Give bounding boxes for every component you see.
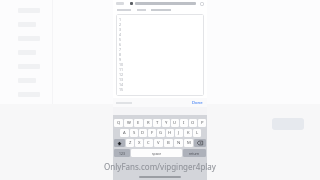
staticText: N: [177, 140, 181, 146]
staticText: 12: [119, 72, 124, 77]
staticText: 9: [119, 57, 122, 62]
staticText: P: [201, 120, 204, 126]
staticText: 13: [119, 77, 124, 82]
button[interactable]: return: [183, 149, 206, 157]
staticText: V: [157, 140, 160, 146]
button[interactable]: O: [189, 119, 197, 127]
button[interactable]: 123: [114, 149, 130, 157]
staticText: T: [156, 120, 159, 126]
button[interactable]: E: [134, 119, 143, 127]
staticText: B: [167, 140, 170, 146]
staticText: M: [187, 140, 191, 146]
staticText: Done: [192, 100, 203, 106]
button[interactable]: [116, 2, 124, 5]
button[interactable]: C: [144, 139, 153, 147]
staticText: OnlyFans.com/vipginger4play: [104, 161, 216, 172]
button[interactable]: F: [148, 129, 156, 137]
staticText: 123: [119, 151, 125, 156]
button[interactable]: Q: [114, 119, 123, 127]
staticText: 7: [119, 47, 122, 52]
staticText: Q: [117, 120, 121, 126]
staticText: W: [127, 120, 131, 126]
staticText: 6: [119, 42, 122, 47]
staticText: K: [187, 130, 190, 136]
button[interactable]: P: [198, 119, 206, 127]
button[interactable]: M: [184, 139, 193, 147]
button[interactable]: B: [164, 139, 173, 147]
staticText: 10: [119, 62, 124, 67]
staticText: D: [141, 130, 145, 136]
staticText: C: [147, 140, 150, 146]
button[interactable]: Done: [191, 100, 204, 106]
staticText: G: [159, 130, 163, 136]
button[interactable]: H: [166, 129, 174, 137]
staticText: 4: [119, 32, 122, 37]
staticText: 3: [119, 27, 122, 32]
button[interactable]: Backspace: [194, 139, 206, 147]
button[interactable]: X: [135, 139, 143, 147]
button[interactable]: I: [180, 119, 188, 127]
staticText: A: [123, 130, 126, 136]
staticText: 15: [119, 87, 124, 92]
staticText: S: [133, 130, 136, 136]
staticText: I: [183, 120, 185, 126]
staticText: Y: [165, 120, 168, 126]
button[interactable]: J: [175, 129, 183, 137]
button[interactable]: 1: [116, 14, 204, 96]
button[interactable]: D: [139, 129, 147, 137]
button[interactable]: R: [144, 119, 152, 127]
staticText: return: [189, 151, 200, 156]
button[interactable]: K: [184, 129, 192, 137]
staticText: L: [196, 130, 199, 136]
staticText: R: [147, 120, 150, 126]
staticText: H: [168, 130, 172, 136]
button[interactable]: Z: [126, 139, 134, 147]
staticText: 11: [119, 67, 124, 72]
staticText: 8: [119, 52, 122, 57]
staticText: space: [152, 151, 162, 156]
button[interactable]: A: [120, 129, 129, 137]
button[interactable]: N: [174, 139, 183, 147]
staticText: X: [138, 140, 141, 146]
button[interactable]: T: [153, 119, 161, 127]
staticText: Z: [129, 140, 132, 146]
button[interactable]: Shift: [114, 139, 125, 147]
button[interactable]: G: [157, 129, 165, 137]
staticText: 2: [119, 22, 122, 27]
staticText: 1: [119, 17, 122, 22]
staticText: E: [137, 120, 140, 126]
staticText: F: [151, 130, 154, 136]
button[interactable]: Close: [200, 2, 204, 6]
button[interactable]: L: [193, 129, 201, 137]
button[interactable]: S: [130, 129, 138, 137]
staticText: J: [178, 130, 180, 136]
staticText: 5: [119, 37, 122, 42]
button[interactable]: Y: [162, 119, 170, 127]
staticText: U: [173, 120, 177, 126]
staticText: 14: [119, 82, 124, 87]
button[interactable]: W: [124, 119, 133, 127]
staticText: O: [191, 120, 195, 126]
button[interactable]: space: [131, 149, 182, 157]
button[interactable]: U: [171, 119, 179, 127]
button[interactable]: V: [154, 139, 163, 147]
